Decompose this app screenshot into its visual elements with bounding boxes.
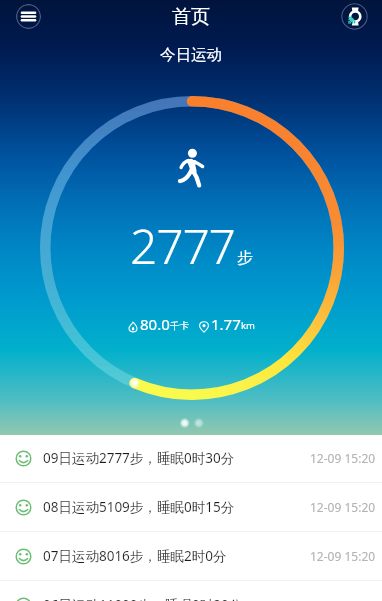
- staticText: 千卡: [170, 320, 189, 332]
- staticText: km: [241, 319, 255, 332]
- staticText: 步: [237, 248, 253, 268]
- staticText: 睡眠0时15分: [157, 498, 235, 516]
- staticText: 80.0: [140, 314, 170, 334]
- button[interactable]: 07日运动8016步，: [0, 532, 382, 581]
- staticText: 08日运动5109步，: [43, 498, 157, 516]
- button[interactable]: Menu: [16, 4, 41, 29]
- staticText: 首页: [172, 5, 210, 29]
- staticText: 2777: [130, 213, 235, 278]
- staticText: 睡眠0时20分: [165, 596, 243, 601]
- staticText: 06日运动11000步，: [43, 596, 165, 601]
- button[interactable]: 08日运动5109步，: [0, 483, 382, 532]
- button[interactable]: 06日运动11000步，: [0, 581, 382, 601]
- button[interactable]: 09日运动2777步，: [0, 434, 382, 483]
- staticText: 今日运动: [160, 45, 222, 65]
- staticText: 睡眠0时30分: [157, 449, 235, 467]
- button[interactable]: Connected device: [341, 3, 368, 30]
- staticText: 12-09 15:20: [310, 499, 376, 515]
- staticText: 12-09 15:20: [310, 450, 376, 466]
- staticText: 12-09 15:20: [310, 548, 376, 564]
- staticText: 睡眠2时0分: [157, 547, 227, 565]
- staticText: 1.77: [211, 314, 241, 334]
- staticText: 07日运动8016步，: [43, 547, 157, 565]
- staticText: 09日运动2777步，: [43, 449, 157, 467]
